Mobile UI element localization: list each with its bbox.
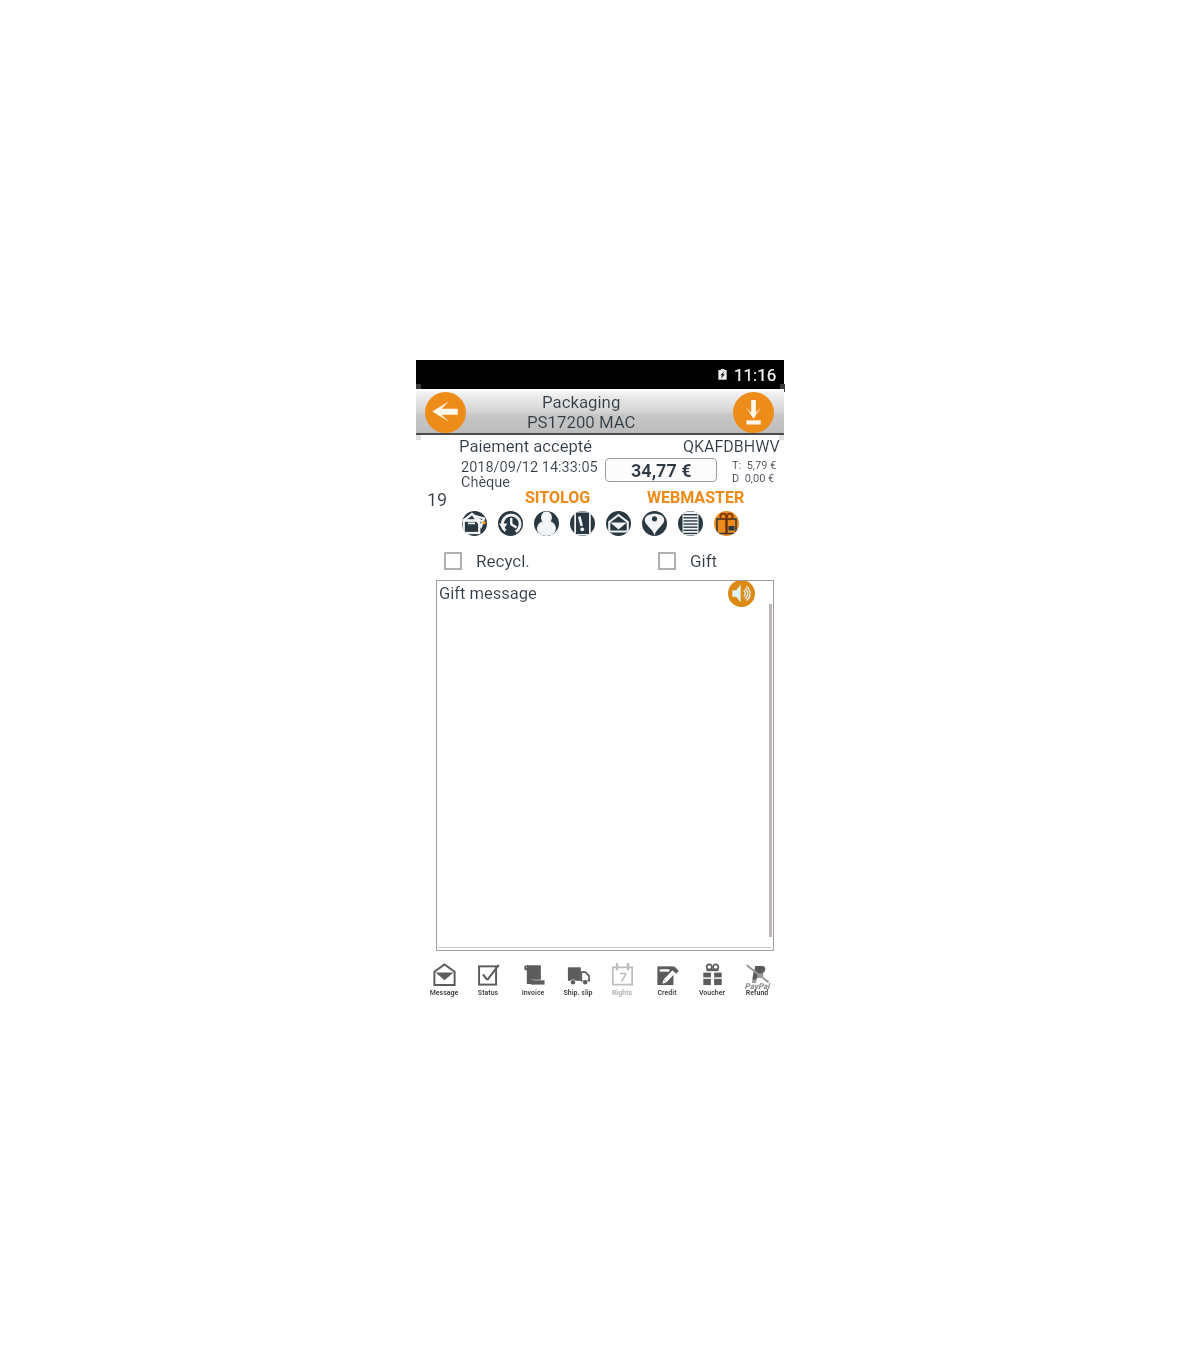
button[interactable]: Parcel: [462, 511, 487, 536]
staticText: Gift: [690, 551, 718, 571]
button[interactable]: Message: [422, 956, 466, 998]
staticText: Message: [422, 989, 466, 997]
button[interactable]: History: [498, 511, 523, 536]
button[interactable]: Rights: [600, 956, 644, 998]
staticText: Ship. slip: [556, 989, 600, 997]
staticText: Status: [466, 989, 510, 997]
staticText: T: 5,79 €: [732, 459, 777, 472]
button[interactable]: Recycl.: [444, 548, 530, 574]
button[interactable]: 34,77 €: [605, 458, 717, 482]
button[interactable]: Status: [466, 956, 510, 998]
staticText: Credit: [645, 989, 689, 997]
button[interactable]: Credit: [645, 956, 689, 998]
button[interactable]: PayPal: [735, 956, 779, 998]
staticText: PayPal: [735, 982, 779, 991]
button[interactable]: Back: [425, 392, 466, 433]
button[interactable]: Alert: [570, 511, 595, 536]
staticText: SITOLOG: [525, 488, 591, 507]
button[interactable]: Mail: [606, 511, 631, 536]
staticText: Chèque: [461, 474, 511, 491]
button[interactable]: SITOLOG: [504, 488, 612, 507]
staticText: Recycl.: [476, 551, 530, 571]
staticText: PS17200 MAC: [527, 412, 636, 432]
button[interactable]: Gift: [714, 511, 739, 536]
button[interactable]: Gift: [658, 548, 718, 574]
button[interactable]: Download: [733, 392, 774, 433]
staticText: Paiement accepté: [459, 437, 593, 456]
button[interactable]: Customer: [534, 511, 559, 536]
staticText: 34,77 €: [631, 460, 692, 481]
staticText: D 0,00 €: [732, 472, 775, 485]
button[interactable]: Gift message: [436, 580, 774, 951]
staticText: QKAFDBHWV: [683, 437, 780, 456]
staticText: Rights: [600, 989, 644, 997]
button[interactable]: Location: [642, 511, 667, 536]
staticText: 2018/09/12 14:33:05: [461, 459, 598, 476]
staticText: 19: [427, 489, 448, 510]
button[interactable]: Read aloud: [728, 580, 755, 607]
staticText: Gift message: [439, 584, 537, 603]
staticText: Refund: [735, 989, 779, 997]
button[interactable]: Ship. slip: [556, 956, 600, 998]
staticText: WEBMASTER: [647, 488, 745, 507]
button[interactable]: Invoice: [511, 956, 555, 998]
button[interactable]: WEBMASTER: [642, 488, 750, 507]
staticText: Voucher: [690, 989, 734, 997]
button[interactable]: Voucher: [690, 956, 734, 998]
staticText: Invoice: [511, 989, 555, 997]
staticText: Packaging: [542, 392, 621, 412]
staticText: 11:16: [734, 365, 777, 385]
button[interactable]: Details: [678, 511, 703, 536]
